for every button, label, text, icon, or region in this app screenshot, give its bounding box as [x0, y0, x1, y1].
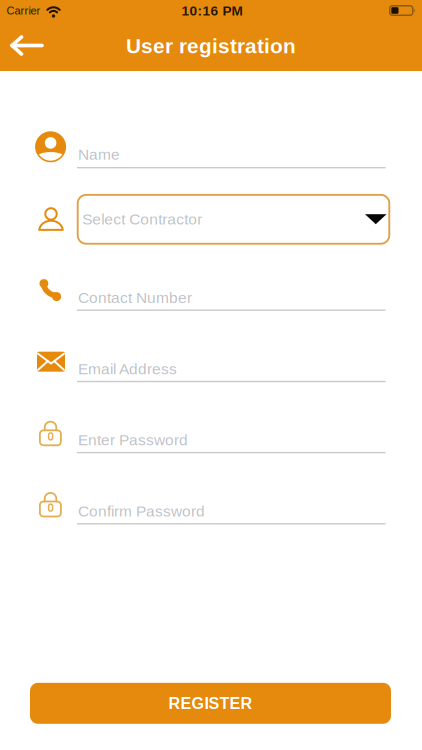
staticText: 10:16 PM — [181, 3, 242, 18]
button[interactable]: Back — [2, 29, 52, 61]
staticText: Email Address — [78, 360, 177, 378]
staticText: Name — [78, 146, 120, 163]
staticText: Carrier — [6, 4, 40, 17]
staticText: Confirm Password — [78, 503, 205, 520]
staticText: Contact Number — [78, 289, 192, 306]
button[interactable]: REGISTER — [30, 683, 391, 724]
staticText: User registration — [126, 34, 296, 58]
staticText: REGISTER — [168, 694, 252, 712]
staticText: Enter Password — [78, 431, 188, 449]
staticText: Select Contractor — [82, 210, 202, 228]
button[interactable]: Select Contractor — [77, 194, 390, 245]
